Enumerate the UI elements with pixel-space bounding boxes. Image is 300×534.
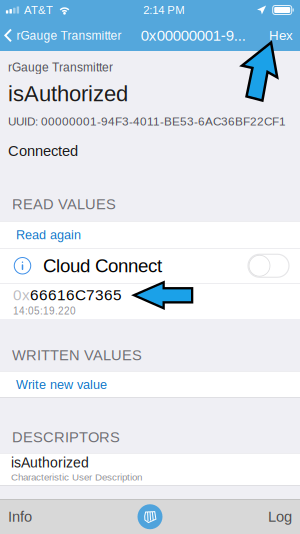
button[interactable]: Hex <box>265 20 300 51</box>
staticText: DESCRIPTORS <box>12 429 120 445</box>
staticText: 66616C7365 <box>30 286 122 303</box>
button[interactable]: Cloud Connect <box>0 248 300 283</box>
staticText: isAuthorized <box>11 455 89 470</box>
staticText: rGauge Transmitter <box>8 61 113 74</box>
staticText: Cloud Connect <box>43 255 162 276</box>
button[interactable]: Log <box>259 499 299 534</box>
staticText: Hex <box>269 28 293 43</box>
staticText: Connected <box>8 143 78 159</box>
button[interactable]: Read again <box>0 221 300 248</box>
button[interactable]: isAuthorized <box>0 453 300 485</box>
staticText: 0x <box>13 286 30 303</box>
staticText: Characteristic User Description <box>11 472 142 482</box>
staticText: READ VALUES <box>12 196 116 212</box>
staticText: AT&T <box>24 4 53 16</box>
button[interactable]: Write new value <box>0 371 300 397</box>
staticText: Log <box>268 509 292 525</box>
staticText: 0x00000001-9... <box>141 27 246 44</box>
staticText: Read again <box>16 228 81 242</box>
staticText: isAuthorized <box>8 81 128 106</box>
button[interactable]: Info <box>1 499 41 534</box>
staticText: Info <box>8 509 32 525</box>
button[interactable]: rGauge Transmitter <box>0 20 121 51</box>
staticText: rGauge Transmitter <box>16 29 121 42</box>
button[interactable]: nRF Connect <box>129 499 171 534</box>
button[interactable]: 0x <box>0 283 300 319</box>
staticText: Write new value <box>16 377 107 392</box>
staticText: UUID: 00000001-94F3-4011-BE53-6AC36BF22C… <box>8 115 286 128</box>
staticText: 2:14 PM <box>143 4 184 16</box>
staticText: 14:05:19.220 <box>13 305 76 316</box>
staticText: WRITTEN VALUES <box>12 347 142 363</box>
